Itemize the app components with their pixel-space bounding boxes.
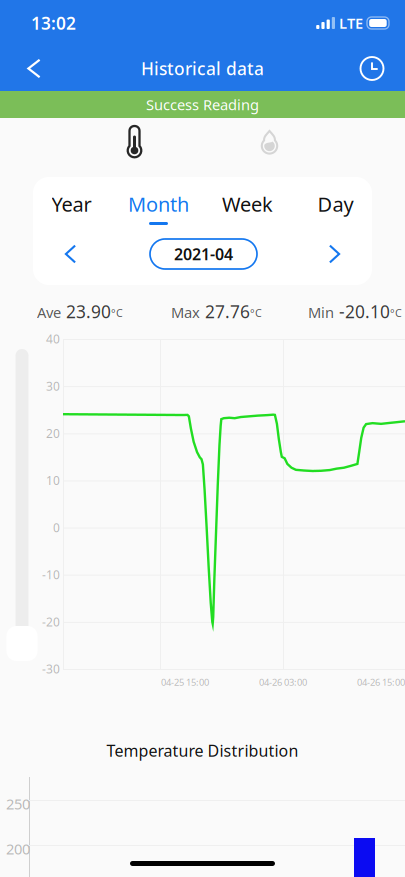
staticText: °C — [111, 306, 123, 320]
staticText: 23.90 — [66, 300, 111, 323]
button[interactable]: Month — [119, 194, 197, 225]
button[interactable]: Next period — [312, 234, 356, 274]
staticText: 200 — [6, 839, 30, 858]
staticText: Week — [222, 191, 273, 217]
staticText: 0 — [53, 520, 60, 535]
staticText: 10 — [46, 472, 60, 488]
staticText: 20 — [46, 425, 60, 441]
staticText: 04-25 15:00 — [161, 676, 209, 688]
staticText: 04-26 03:00 — [259, 676, 307, 688]
button[interactable]: Temperature — [112, 123, 156, 163]
staticText: 30 — [46, 378, 60, 394]
staticText: 04-26 15:00 — [357, 676, 405, 688]
staticText: Min — [308, 302, 334, 322]
staticText: 13:02 — [31, 11, 76, 34]
button[interactable]: Week — [208, 194, 286, 225]
staticText: Day — [317, 191, 353, 217]
staticText: Max — [171, 302, 200, 322]
button[interactable]: Humidity — [247, 123, 291, 163]
button[interactable]: Previous period — [48, 234, 92, 274]
staticText: 250 — [6, 794, 30, 813]
button[interactable]: 2021-04 — [150, 239, 257, 269]
staticText: 40 — [46, 331, 60, 347]
button[interactable]: Back — [12, 46, 56, 90]
staticText: Temperature Distribution — [106, 740, 298, 761]
staticText: 27.76 — [205, 300, 250, 323]
staticText: °C — [250, 306, 262, 320]
staticText: -30 — [42, 661, 60, 677]
staticText: Success Reading — [146, 95, 259, 114]
staticText: -20 — [42, 614, 60, 630]
staticText: -10 — [42, 567, 60, 583]
staticText: Ave — [37, 302, 61, 322]
staticText: Year — [51, 191, 91, 217]
staticText: 2021-04 — [174, 243, 233, 265]
staticText: -20.10 — [339, 300, 390, 323]
button[interactable]: History — [350, 46, 394, 90]
button[interactable]: Day — [296, 194, 374, 225]
staticText: Month — [128, 191, 189, 217]
staticText: LTE — [339, 13, 363, 33]
button[interactable]: Year — [32, 194, 110, 225]
staticText: °C — [390, 306, 402, 320]
staticText: Historical data — [141, 57, 264, 80]
